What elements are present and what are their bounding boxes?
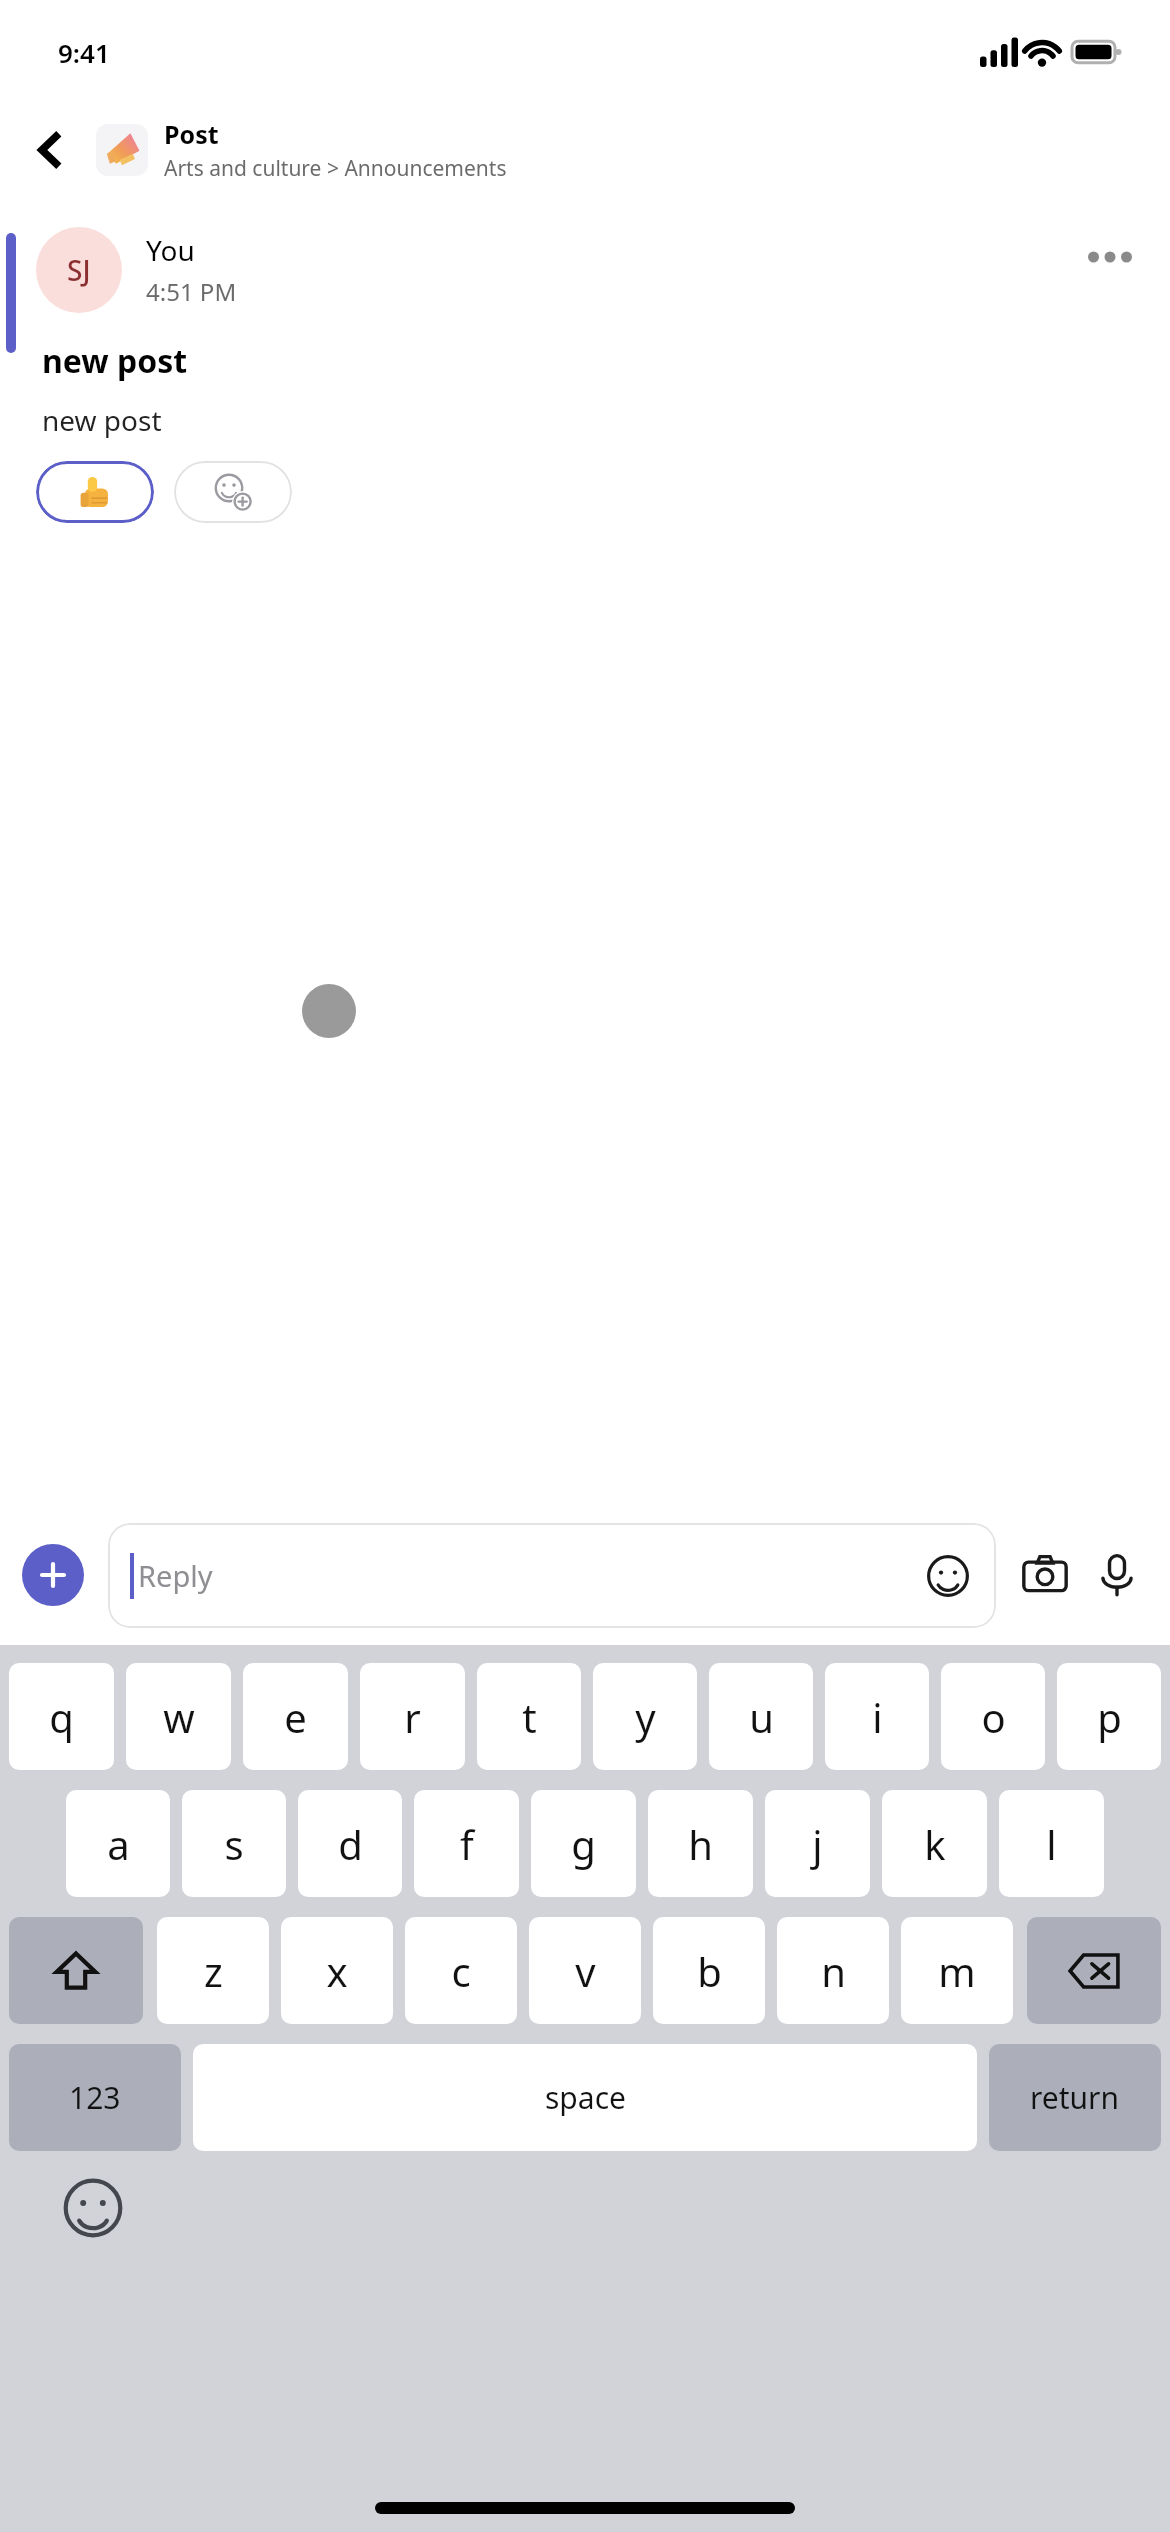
button[interactable]: l	[999, 1790, 1104, 1897]
button[interactable]: k	[882, 1790, 987, 1897]
button[interactable]: Shift	[9, 1917, 143, 2024]
button[interactable]: Emoji	[922, 1550, 974, 1602]
button[interactable]: f	[414, 1790, 519, 1897]
staticText: Reply	[138, 1556, 922, 1595]
button[interactable]: j	[765, 1790, 870, 1897]
button[interactable]: 123	[9, 2044, 181, 2151]
staticText: g	[571, 1817, 596, 1871]
staticText: space	[545, 2077, 626, 2118]
staticText: SJ	[67, 251, 91, 289]
button[interactable]: q	[9, 1663, 114, 1770]
button[interactable]: m	[901, 1917, 1013, 2024]
staticText: n	[821, 1944, 846, 1998]
staticText: You	[146, 231, 195, 269]
button[interactable]: h	[648, 1790, 753, 1897]
staticText: Post	[164, 117, 219, 151]
button[interactable]: Add reaction	[174, 461, 292, 523]
button[interactable]: i	[825, 1663, 929, 1770]
button[interactable]: o	[941, 1663, 1045, 1770]
staticText: i	[872, 1690, 883, 1744]
staticText: 123	[69, 2077, 121, 2118]
button[interactable]: space	[193, 2044, 977, 2151]
button[interactable]: p	[1057, 1663, 1161, 1770]
button[interactable]: Reply	[108, 1523, 996, 1628]
button[interactable]: t	[477, 1663, 581, 1770]
staticText: return	[1030, 2077, 1120, 2118]
staticText: new post	[42, 339, 188, 383]
button[interactable]: a	[66, 1790, 170, 1897]
button[interactable]: w	[126, 1663, 231, 1770]
button[interactable]: z	[157, 1917, 269, 2024]
button[interactable]: c	[405, 1917, 517, 2024]
button[interactable]: Back	[18, 118, 82, 182]
staticText: 9:41	[58, 35, 110, 70]
button[interactable]: x	[281, 1917, 393, 2024]
button[interactable]: Add attachment	[22, 1544, 84, 1606]
staticText: u	[749, 1690, 774, 1744]
staticText: b	[697, 1944, 722, 1998]
staticText: o	[981, 1690, 1006, 1744]
button[interactable]: return	[989, 2044, 1161, 2151]
button[interactable]: n	[777, 1917, 889, 2024]
staticText: d	[338, 1817, 363, 1871]
button[interactable]: More options	[1080, 227, 1140, 287]
button[interactable]: v	[529, 1917, 641, 2024]
staticText: a	[107, 1817, 130, 1871]
button[interactable]: r	[360, 1663, 465, 1770]
staticText: s	[224, 1817, 244, 1871]
button[interactable]: g	[531, 1790, 636, 1897]
staticText: l	[1046, 1817, 1057, 1871]
staticText: v	[575, 1944, 596, 1998]
staticText: c	[451, 1944, 471, 1998]
staticText: r	[404, 1690, 421, 1744]
button[interactable]: d	[298, 1790, 402, 1897]
staticText: z	[204, 1944, 223, 1998]
button[interactable]: Voice message	[1086, 1544, 1148, 1606]
staticText: 4:51 PM	[146, 275, 237, 308]
staticText: m	[938, 1944, 976, 1998]
button[interactable]: Thumbs up reaction	[36, 461, 154, 523]
button[interactable]: Backspace	[1027, 1917, 1161, 2024]
button[interactable]: e	[243, 1663, 348, 1770]
staticText: y	[635, 1690, 656, 1744]
staticText: h	[688, 1817, 713, 1871]
staticText: e	[284, 1690, 307, 1744]
staticText: p	[1097, 1690, 1122, 1744]
button[interactable]: Camera	[1014, 1544, 1076, 1606]
staticText: x	[326, 1944, 348, 1998]
staticText: j	[812, 1817, 823, 1871]
staticText: t	[522, 1690, 537, 1744]
staticText: q	[49, 1690, 74, 1744]
staticText: Arts and culture > Announcements	[164, 154, 507, 183]
button[interactable]: Post	[96, 117, 1152, 183]
button[interactable]: u	[709, 1663, 813, 1770]
staticText: k	[924, 1817, 946, 1871]
staticText: f	[460, 1817, 474, 1871]
button[interactable]: y	[593, 1663, 697, 1770]
staticText: new post	[42, 401, 162, 439]
button[interactable]: s	[182, 1790, 286, 1897]
button[interactable]: b	[653, 1917, 765, 2024]
staticText: w	[163, 1690, 195, 1744]
button[interactable]: Emoji keyboard	[58, 2173, 128, 2243]
